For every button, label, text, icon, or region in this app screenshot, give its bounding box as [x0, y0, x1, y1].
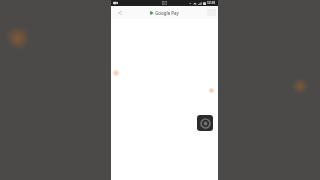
staticText: Google Pay: [155, 10, 179, 16]
button[interactable]: Share: [115, 8, 124, 17]
button[interactable]: Google Pay: [150, 10, 179, 16]
staticText: 12:18: [207, 1, 216, 5]
button[interactable]: Screen record control: [197, 115, 213, 131]
